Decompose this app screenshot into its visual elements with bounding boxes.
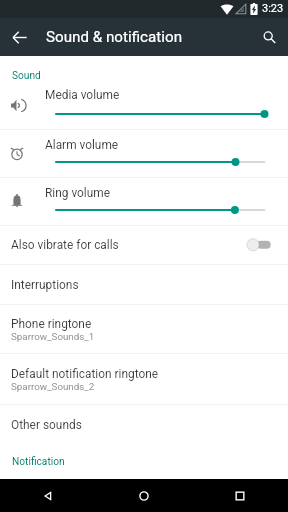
staticText: Other sounds [11,418,82,432]
staticText: Default notification ringtone [11,367,159,381]
staticText: Ring volume [45,186,111,200]
staticText: Interruptions [11,278,79,292]
button[interactable]: Other sounds [0,404,288,444]
button[interactable]: Ring volume [0,177,288,225]
staticText: Sound [12,70,41,82]
staticText: Phone ringtone [11,317,92,331]
staticText: Notification [12,456,65,468]
button[interactable]: Home [96,479,192,512]
button[interactable]: Back [0,479,96,512]
staticText: Sparrow_Sounds_1 [11,331,95,342]
button[interactable]: Also vibrate for calls [0,225,288,264]
button[interactable]: Alarm volume [0,129,288,177]
button[interactable]: Navigate up [6,24,32,50]
button[interactable]: Search [256,24,282,50]
staticText: Alarm volume [45,138,119,152]
button[interactable]: Interruptions [0,264,288,304]
button[interactable]: Media volume [0,81,288,129]
button[interactable]: Phone ringtone [0,304,288,353]
staticText: 3:23 [262,2,284,15]
staticText: Sparrow_Sounds_2 [11,381,95,392]
staticText: Also vibrate for calls [11,238,119,252]
staticText: Media volume [45,88,120,102]
button[interactable]: Recent apps [192,479,288,512]
staticText: Sound & notification [46,28,183,46]
button[interactable]: Default notification ringtone [0,353,288,404]
